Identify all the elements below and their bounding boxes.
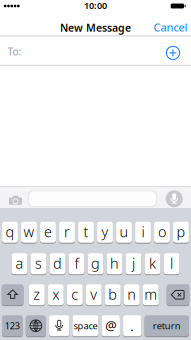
button[interactable]: v [86, 284, 102, 305]
staticText: g [91, 253, 100, 273]
button[interactable]: s [31, 253, 46, 274]
button[interactable]: z [29, 284, 45, 305]
button[interactable]: 123 [2, 315, 23, 336]
staticText: h [110, 253, 119, 273]
button[interactable]: p [173, 222, 189, 243]
button[interactable]: n [124, 284, 140, 305]
button[interactable]: y [97, 222, 113, 243]
button[interactable]: Cancel [154, 20, 188, 35]
staticText: v [90, 284, 97, 304]
staticText: u [119, 222, 128, 241]
button[interactable]: f [69, 253, 84, 274]
staticText: New Message [60, 20, 131, 35]
staticText: j [132, 253, 135, 273]
staticText: i [141, 222, 144, 241]
staticText: l [170, 253, 173, 273]
button[interactable]: . [123, 315, 141, 336]
staticText: @ [105, 317, 116, 334]
staticText: y [101, 222, 108, 241]
staticText: c [71, 284, 78, 304]
staticText: 10:00 [84, 0, 107, 12]
staticText: m [144, 284, 157, 304]
button[interactable]: j [126, 253, 141, 274]
button[interactable]: x [48, 284, 64, 305]
staticText: p [176, 222, 185, 241]
button[interactable]: i [135, 222, 151, 243]
staticText: a [15, 253, 23, 273]
button[interactable]: h [107, 253, 122, 274]
button[interactable]: Add Contact [166, 46, 191, 59]
button[interactable]: @ [102, 315, 120, 336]
button[interactable]: d [50, 253, 65, 274]
button[interactable]: m [143, 284, 159, 305]
staticText: e [44, 222, 52, 241]
button[interactable]: Delete [167, 284, 189, 305]
staticText: d [53, 253, 62, 273]
staticText: return [153, 319, 181, 332]
staticText: f [74, 253, 78, 273]
staticText: . [130, 317, 134, 335]
button[interactable]: o [154, 222, 170, 243]
button[interactable]: Dictate [49, 315, 69, 336]
staticText: b [108, 284, 117, 304]
button[interactable]: k [145, 253, 160, 274]
staticText: 123 [5, 319, 20, 332]
staticText: t [83, 222, 88, 241]
staticText: x [52, 284, 59, 304]
button[interactable]: Message field [29, 191, 156, 207]
staticText: o [158, 222, 166, 241]
button[interactable]: w [21, 222, 37, 243]
button[interactable]: u [116, 222, 132, 243]
button[interactable]: l [164, 253, 179, 274]
button[interactable]: a [12, 253, 27, 274]
button[interactable]: Camera [0, 192, 22, 203]
staticText: k [149, 253, 156, 273]
button[interactable]: e [40, 222, 56, 243]
staticText: n [127, 284, 136, 304]
button[interactable]: space [72, 315, 98, 336]
button[interactable]: g [88, 253, 103, 274]
button[interactable]: return [145, 315, 189, 336]
button[interactable]: Next Keyboard [26, 315, 46, 336]
staticText: s [35, 253, 42, 273]
button[interactable]: r [59, 222, 75, 243]
staticText: Cancel [154, 20, 188, 35]
button[interactable]: c [67, 284, 83, 305]
staticText: space [73, 319, 97, 332]
staticText: q [5, 222, 14, 241]
button[interactable]: Record Audio [166, 190, 183, 207]
button[interactable]: b [105, 284, 121, 305]
button[interactable]: t [78, 222, 94, 243]
button[interactable]: Shift [2, 284, 23, 305]
button[interactable]: q [2, 222, 18, 243]
staticText: r [64, 222, 70, 241]
staticText: z [33, 284, 40, 304]
staticText: To: [7, 44, 21, 58]
staticText: w [23, 222, 34, 241]
